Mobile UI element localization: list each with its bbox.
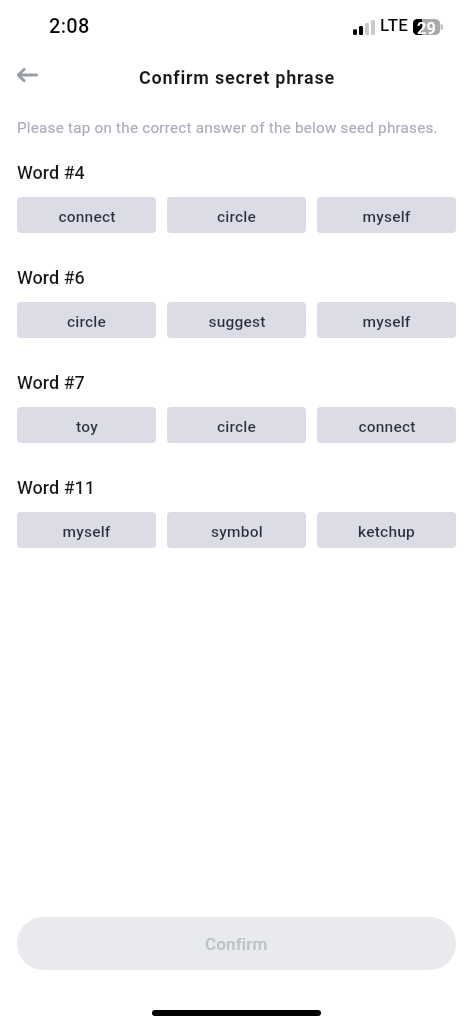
staticText: Please tap on the correct answer of the … — [17, 119, 438, 137]
staticText: Confirm secret phrase — [139, 67, 335, 88]
staticText: myself — [362, 208, 411, 226]
button[interactable]: Confirm — [17, 917, 456, 970]
staticText: ketchup — [358, 523, 415, 541]
staticText: circle — [217, 208, 256, 226]
staticText: 29 — [417, 19, 436, 34]
staticText: Word #6 — [17, 267, 85, 288]
button[interactable]: circle — [167, 407, 306, 443]
button[interactable]: connect — [317, 407, 456, 443]
staticText: Word #4 — [17, 162, 85, 183]
button[interactable]: circle — [17, 302, 156, 338]
button[interactable]: myself — [317, 197, 456, 233]
staticText: toy — [76, 418, 98, 436]
staticText: circle — [217, 418, 256, 436]
staticText: LTE — [380, 15, 409, 35]
button[interactable]: ketchup — [317, 512, 456, 548]
staticText: Word #11 — [17, 477, 96, 498]
button[interactable]: symbol — [167, 512, 306, 548]
staticText: Confirm — [205, 934, 268, 954]
staticText: circle — [67, 313, 106, 331]
button[interactable]: toy — [17, 407, 156, 443]
staticText: 2:08 — [49, 14, 90, 37]
staticText: myself — [62, 523, 111, 541]
button[interactable]: myself — [17, 512, 156, 548]
staticText: suggest — [208, 313, 266, 331]
staticText: myself — [362, 313, 411, 331]
staticText: connect — [358, 418, 416, 436]
button[interactable]: myself — [317, 302, 456, 338]
button[interactable]: circle — [167, 197, 306, 233]
button[interactable]: Back — [5, 55, 49, 99]
staticText: Word #7 — [17, 372, 85, 393]
button[interactable]: connect — [17, 197, 156, 233]
staticText: connect — [58, 208, 116, 226]
staticText: symbol — [211, 523, 263, 541]
button[interactable]: suggest — [167, 302, 306, 338]
